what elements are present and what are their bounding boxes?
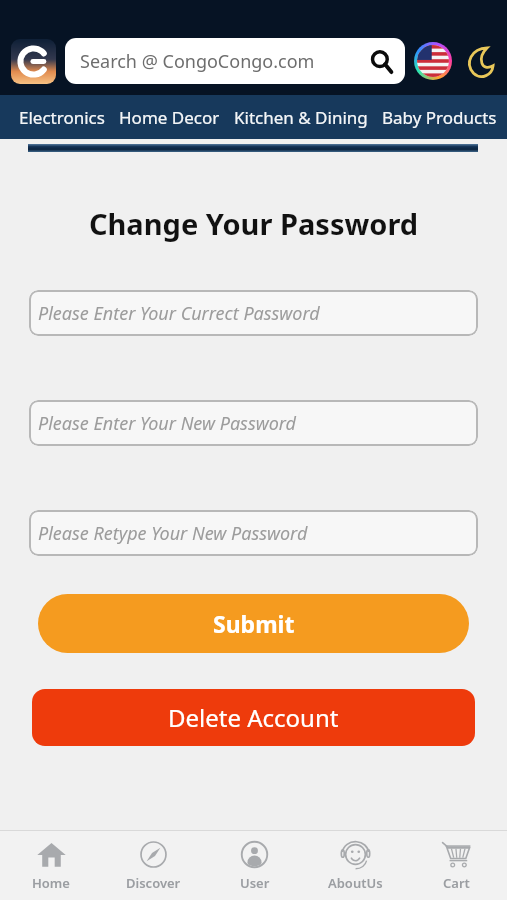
button[interactable]: Home Decor	[114, 101, 225, 134]
button[interactable]: Please Retype Your New Password	[29, 510, 478, 556]
staticText: Discover	[126, 874, 181, 892]
button[interactable]: Search @ CongoCongo.com	[65, 38, 405, 84]
staticText: Kitchen & Dining	[234, 106, 368, 129]
staticText: Cart	[443, 874, 470, 892]
staticText: Home Decor	[119, 106, 220, 129]
staticText: Baby Products	[382, 106, 497, 129]
button[interactable]: User	[204, 831, 305, 900]
button[interactable]: Home	[0, 831, 102, 900]
button[interactable]: Baby Products	[377, 101, 502, 134]
staticText: Electronics	[19, 106, 105, 129]
staticText: Home	[32, 874, 70, 892]
staticText: AboutUs	[328, 874, 383, 892]
staticText: Change Your Password	[0, 204, 507, 243]
staticText: Delete Account	[168, 701, 339, 734]
button[interactable]: Cart	[406, 831, 507, 900]
button[interactable]: Language	[414, 42, 452, 80]
button[interactable]: Delete Account	[32, 689, 475, 746]
staticText: Submit	[213, 608, 295, 639]
button[interactable]: Kitchen & Dining	[229, 101, 373, 134]
staticText: Search @ CongoCongo.com	[80, 49, 370, 74]
button[interactable]: CongoCongo home	[11, 39, 56, 84]
staticText: User	[240, 874, 270, 892]
button[interactable]: Please Enter Your Currect Password	[29, 290, 478, 336]
button[interactable]: Discover	[102, 831, 204, 900]
button[interactable]: Please Enter Your New Password	[29, 400, 478, 446]
staticText: Please Retype Your New Password	[38, 521, 308, 546]
button[interactable]: Dark mode	[458, 41, 498, 81]
staticText: Please Enter Your Currect Password	[38, 301, 320, 326]
button[interactable]: AboutUs	[305, 831, 406, 900]
button[interactable]: Electronics	[14, 101, 110, 134]
staticText: Please Enter Your New Password	[38, 411, 297, 436]
button[interactable]: Submit	[38, 594, 469, 653]
